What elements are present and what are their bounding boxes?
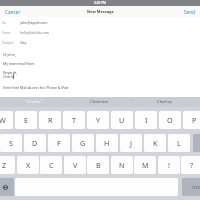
other: Emoji keyboard — [3, 185, 8, 190]
staticText: C — [49, 160, 54, 170]
button[interactable]: Emoji — [0, 178, 14, 196]
staticText: “Charlie” — [25, 99, 42, 105]
button[interactable]: .?123 — [182, 178, 200, 196]
button[interactable]: C — [40, 156, 62, 174]
staticText: L — [177, 138, 181, 148]
button[interactable]: U — [111, 111, 133, 129]
button[interactable]: “Charlie” — [1, 97, 65, 107]
staticText: M — [142, 160, 149, 170]
staticText: 4:36 PM — [94, 1, 107, 5]
button[interactable]: L — [168, 134, 190, 152]
staticText: Z — [2, 160, 7, 170]
button[interactable]: S — [0, 134, 22, 152]
staticText: V — [73, 160, 78, 170]
staticText: john@apple.com — [20, 20, 48, 25]
staticText: Sent from Mail Access for iPhone & iPad — [3, 85, 69, 90]
button[interactable]: K — [144, 134, 166, 152]
button[interactable]: F — [48, 134, 70, 152]
button[interactable]: Cancel — [5, 9, 20, 15]
staticText: F — [57, 138, 61, 148]
button[interactable]: I — [135, 111, 157, 129]
button[interactable]: Z — [0, 156, 15, 174]
button[interactable]: D — [24, 134, 46, 152]
button[interactable]: O — [159, 111, 181, 129]
staticText: Hi John, — [3, 52, 16, 57]
staticText: K — [153, 138, 158, 148]
staticText: ! — [168, 160, 170, 170]
staticText: Cancel — [5, 9, 20, 15]
button[interactable]: ! — [158, 156, 180, 174]
button[interactable]: Charlotte — [67, 97, 131, 107]
staticText: Charlotte — [90, 99, 109, 105]
button[interactable]: Subject: — [0, 37, 200, 47]
button[interactable]: R — [39, 111, 61, 129]
button[interactable]: ? — [181, 156, 200, 174]
button[interactable]: N — [111, 156, 133, 174]
staticText: Y — [96, 115, 101, 125]
staticText: O — [167, 115, 173, 125]
staticText: To: — [2, 20, 7, 24]
staticText: From: — [2, 30, 11, 34]
button[interactable]: Send — [184, 9, 195, 15]
staticText: X — [26, 160, 31, 170]
staticText: P — [192, 115, 197, 125]
staticText: Charlie — [3, 74, 15, 79]
staticText: .?123 — [191, 185, 200, 190]
staticText: Regards, — [3, 70, 18, 75]
button[interactable]: W — [0, 111, 13, 129]
staticText: U — [119, 115, 125, 125]
staticText: Charley — [157, 99, 172, 105]
button[interactable]: X — [17, 156, 39, 174]
staticText: My new email from — [3, 61, 35, 66]
button[interactable]: G — [72, 134, 94, 152]
staticText: Hey — [20, 40, 27, 45]
staticText: Subject: — [2, 40, 15, 44]
staticText: ? — [190, 160, 194, 170]
button[interactable]: V — [64, 156, 86, 174]
staticText: I — [145, 115, 148, 125]
staticText: D — [32, 138, 38, 148]
button[interactable]: Charley — [132, 97, 196, 107]
button[interactable]: M — [134, 156, 156, 174]
staticText: B — [96, 160, 101, 170]
button[interactable]: T — [63, 111, 85, 129]
button[interactable]: From: — [0, 27, 200, 37]
staticText: J — [130, 138, 132, 148]
staticText: W — [0, 115, 6, 125]
button[interactable]: J — [120, 134, 142, 152]
staticText: hello@olclub.com — [20, 30, 50, 35]
button[interactable]: H — [96, 134, 118, 152]
staticText: New Message — [87, 9, 114, 14]
staticText: G — [80, 138, 86, 148]
staticText: T — [72, 115, 76, 125]
button[interactable]: P — [183, 111, 200, 129]
staticText: E — [24, 115, 28, 125]
staticText: N — [119, 160, 125, 170]
staticText: R — [48, 115, 53, 125]
staticText: Send — [184, 9, 195, 15]
button[interactable]: B — [87, 156, 109, 174]
button[interactable]: Y — [87, 111, 109, 129]
staticText: H — [104, 138, 110, 148]
button[interactable]: To: — [0, 17, 200, 27]
staticText: S — [9, 138, 13, 148]
button[interactable]: E — [15, 111, 37, 129]
